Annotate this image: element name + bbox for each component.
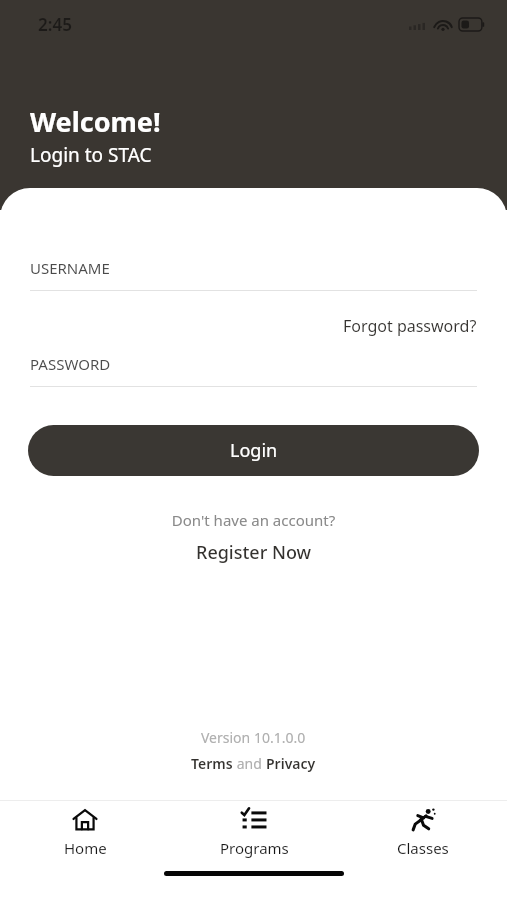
button[interactable]: Forgot password? <box>343 315 477 337</box>
button[interactable]: USERNAME <box>30 258 477 291</box>
button[interactable]: PASSWORD <box>30 354 477 387</box>
button[interactable]: Login <box>28 425 479 476</box>
other: Home <box>72 807 98 833</box>
button[interactable]: Register Now <box>196 540 312 565</box>
other: Programs <box>241 807 267 833</box>
button[interactable]: Privacy <box>266 754 316 773</box>
staticText: USERNAME <box>30 258 110 278</box>
staticText: Welcome! <box>30 103 161 140</box>
staticText: Home <box>64 838 107 858</box>
staticText: Login <box>230 438 278 463</box>
staticText: Programs <box>220 838 289 858</box>
staticText: Login to STAC <box>30 142 152 168</box>
button[interactable]: Home <box>15 803 155 862</box>
other: Classes <box>410 807 436 833</box>
staticText: PASSWORD <box>30 354 111 374</box>
button[interactable]: Programs <box>184 803 324 862</box>
staticText: and <box>233 754 266 773</box>
staticText: Don't have an account? <box>0 510 507 530</box>
button[interactable]: Classes <box>353 803 493 862</box>
staticText: 2:45 <box>38 13 72 36</box>
staticText: Version 10.1.0.0 <box>201 728 306 747</box>
button[interactable]: Terms <box>191 754 233 773</box>
staticText: Classes <box>397 838 449 858</box>
